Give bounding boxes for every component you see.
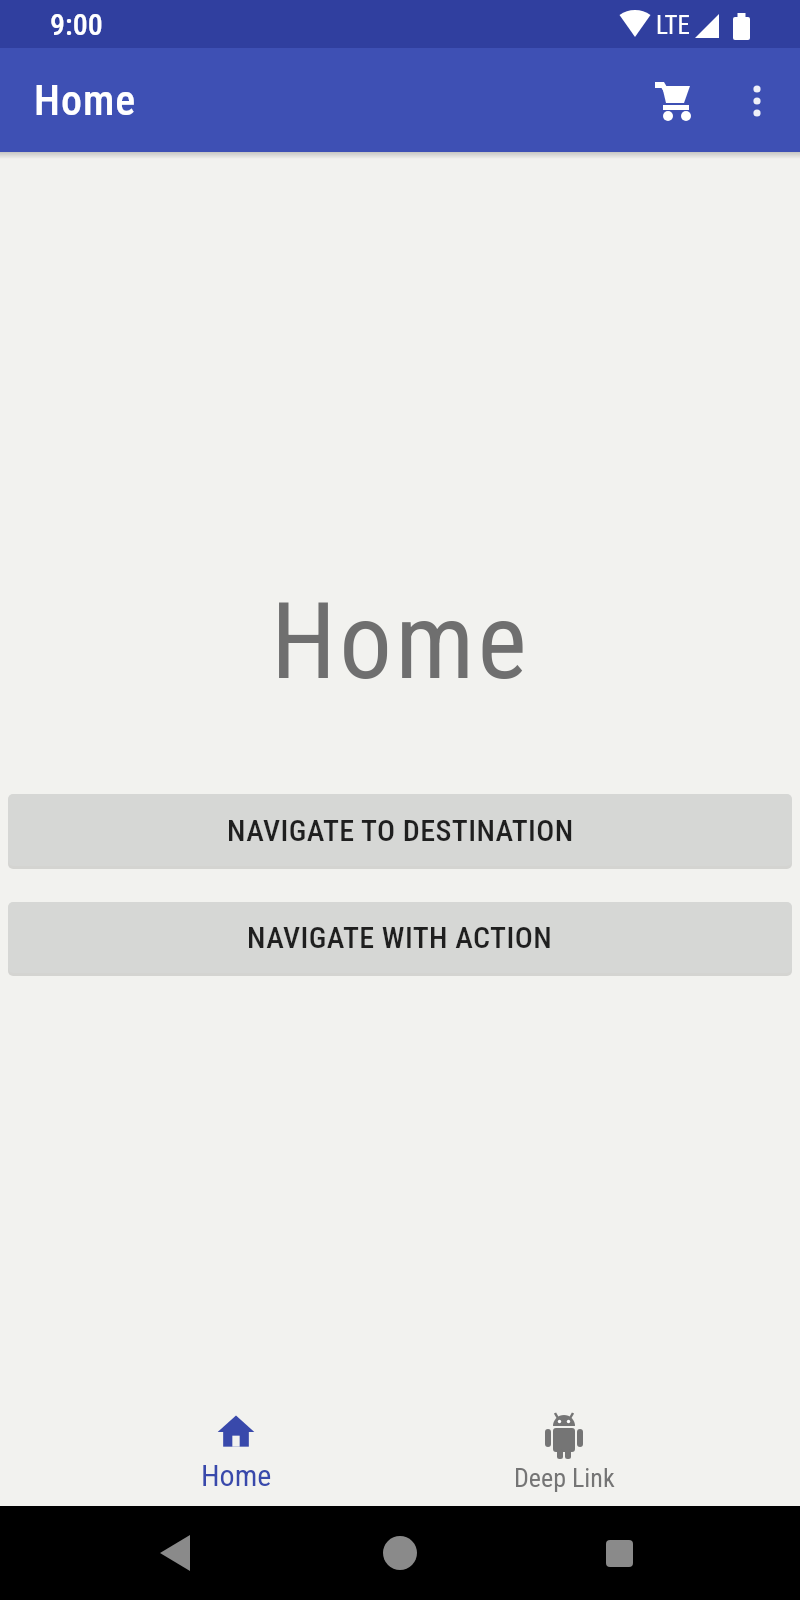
staticText: NAVIGATE WITH ACTION [247, 920, 553, 955]
button[interactable] [377, 1536, 423, 1582]
button[interactable] [733, 76, 781, 124]
staticText: Deep Link [514, 1463, 615, 1493]
button[interactable]: Home [36, 1398, 436, 1506]
staticText: NAVIGATE TO DESTINATION [227, 813, 574, 848]
button[interactable]: NAVIGATE WITH ACTION [8, 902, 792, 973]
staticText: Home [271, 581, 530, 704]
button[interactable]: Deep Link [364, 1398, 764, 1506]
staticText: LTE [656, 11, 690, 40]
button[interactable]: NAVIGATE TO DESTINATION [8, 794, 792, 866]
button[interactable] [644, 72, 700, 128]
button[interactable] [152, 1535, 198, 1581]
staticText: Home [34, 76, 137, 125]
staticText: 9:00 [50, 7, 103, 42]
staticText: Home [201, 1458, 272, 1493]
button[interactable] [596, 1540, 642, 1586]
